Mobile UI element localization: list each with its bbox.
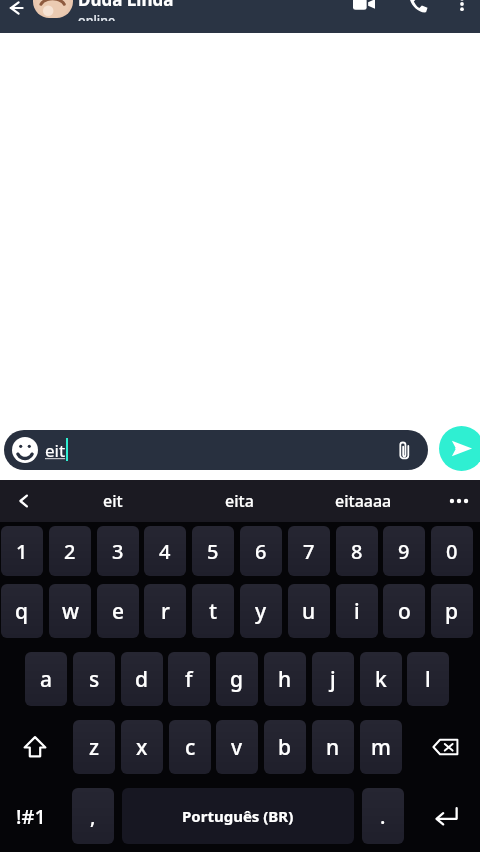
button[interactable]: 8: [336, 526, 378, 576]
staticText: 3: [112, 538, 124, 565]
button[interactable]: n: [312, 720, 354, 774]
button[interactable]: a: [25, 652, 67, 706]
button[interactable]: 1: [1, 526, 43, 576]
staticText: p: [445, 597, 459, 626]
staticText: f: [185, 665, 193, 694]
button[interactable]: Backspace: [414, 720, 478, 774]
staticText: d: [135, 665, 149, 694]
button[interactable]: Video call: [345, 0, 383, 20]
staticText: m: [371, 733, 391, 762]
button[interactable]: q: [1, 584, 43, 638]
staticText: j: [330, 665, 336, 694]
button[interactable]: 9: [383, 526, 425, 576]
staticText: a: [40, 665, 53, 694]
staticText: ,: [90, 803, 96, 830]
button[interactable]: b: [264, 720, 306, 774]
button[interactable]: z: [73, 720, 115, 774]
staticText: e: [112, 597, 125, 626]
staticText: 1: [16, 538, 28, 565]
button[interactable]: g: [216, 652, 258, 706]
button[interactable]: Voice call: [399, 0, 437, 20]
button[interactable]: 5: [192, 526, 234, 576]
staticText: k: [375, 665, 387, 694]
staticText: g: [230, 665, 244, 694]
button[interactable]: Shift: [4, 720, 66, 774]
staticText: h: [278, 665, 292, 694]
staticText: b: [278, 733, 292, 762]
button[interactable]: eita: [198, 480, 280, 522]
button[interactable]: Back: [0, 0, 34, 24]
button[interactable]: m: [360, 720, 402, 774]
button[interactable]: t: [192, 584, 234, 638]
button[interactable]: Emoji: [12, 437, 38, 463]
button[interactable]: Send: [439, 426, 480, 471]
staticText: z: [89, 733, 100, 762]
button[interactable]: More suggestions: [438, 480, 480, 522]
button[interactable]: v: [216, 720, 258, 774]
button[interactable]: y: [240, 584, 282, 638]
button[interactable]: 7: [288, 526, 330, 576]
button[interactable]: 2: [49, 526, 91, 576]
button[interactable]: s: [73, 652, 115, 706]
button[interactable]: ,: [72, 788, 114, 844]
button[interactable]: eitaaaa: [322, 480, 404, 522]
button[interactable]: 0: [431, 526, 473, 576]
staticText: l: [425, 665, 431, 694]
staticText: .: [380, 803, 386, 830]
staticText: 9: [398, 538, 410, 565]
button[interactable]: o: [383, 584, 425, 638]
button[interactable]: Emoji: [4, 430, 428, 470]
staticText: r: [161, 597, 170, 626]
button[interactable]: Português (BR): [122, 788, 354, 844]
staticText: eit: [103, 490, 123, 512]
staticText: u: [302, 597, 316, 626]
button[interactable]: 3: [97, 526, 139, 576]
button[interactable]: Previous suggestions: [2, 480, 45, 522]
staticText: eit: [45, 439, 66, 462]
button[interactable]: k: [360, 652, 402, 706]
staticText: 8: [351, 538, 363, 565]
button[interactable]: Attach: [392, 438, 416, 462]
button[interactable]: Enter: [414, 788, 478, 844]
button[interactable]: u: [288, 584, 330, 638]
button[interactable]: p: [431, 584, 473, 638]
button[interactable]: i: [336, 584, 378, 638]
staticText: Português (BR): [182, 806, 294, 826]
staticText: s: [89, 665, 100, 694]
button[interactable]: f: [168, 652, 210, 706]
button[interactable]: 4: [144, 526, 186, 576]
button[interactable]: Contact photo: [33, 0, 73, 18]
button[interactable]: w: [49, 584, 91, 638]
button[interactable]: d: [121, 652, 163, 706]
staticText: c: [185, 733, 196, 762]
staticText: q: [15, 597, 29, 626]
staticText: w: [62, 597, 79, 626]
button[interactable]: !#1: [0, 788, 62, 844]
staticText: t: [209, 597, 218, 626]
staticText: Duda Linda: [78, 0, 174, 11]
staticText: i: [354, 597, 360, 626]
button[interactable]: eit: [72, 480, 154, 522]
button[interactable]: c: [169, 720, 211, 774]
button[interactable]: e: [97, 584, 139, 638]
staticText: 2: [64, 538, 76, 565]
button[interactable]: h: [264, 652, 306, 706]
button[interactable]: More options: [444, 0, 480, 20]
button[interactable]: .: [362, 788, 404, 844]
staticText: online: [78, 12, 116, 21]
staticText: 0: [446, 538, 458, 565]
button[interactable]: 6: [240, 526, 282, 576]
staticText: x: [136, 733, 148, 762]
button[interactable]: x: [121, 720, 163, 774]
staticText: o: [398, 597, 411, 626]
button[interactable]: l: [407, 652, 449, 706]
staticText: y: [255, 597, 267, 626]
staticText: !#1: [16, 803, 46, 830]
staticText: 6: [255, 538, 267, 565]
staticText: eita: [225, 490, 254, 512]
button[interactable]: r: [144, 584, 186, 638]
button[interactable]: j: [312, 652, 354, 706]
staticText: eitaaaa: [335, 490, 392, 512]
staticText: 4: [159, 538, 171, 565]
staticText: 5: [207, 538, 219, 565]
